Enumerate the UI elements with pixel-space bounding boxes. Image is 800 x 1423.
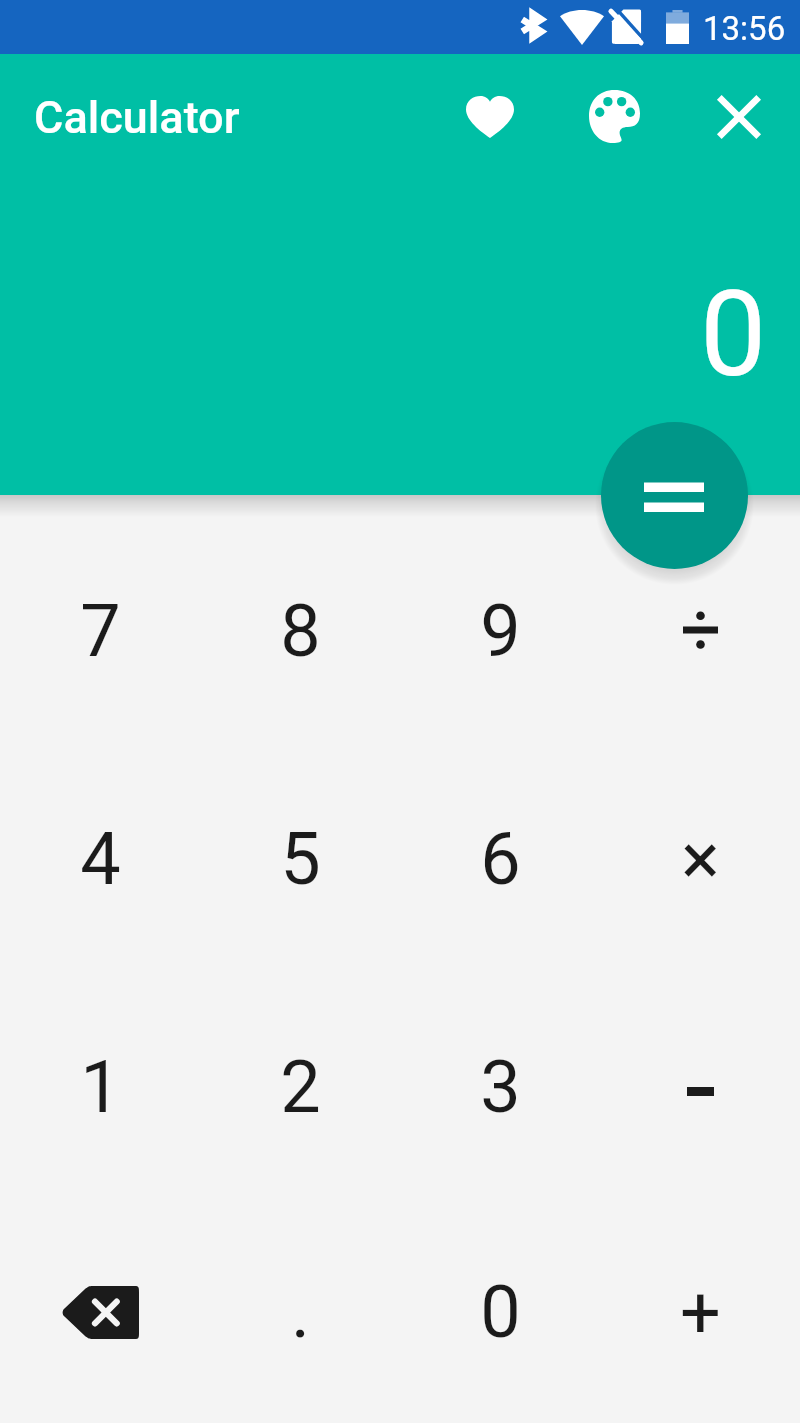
staticText: 9 (480, 589, 521, 673)
button[interactable]: 8 (200, 517, 400, 745)
staticText: 6 (480, 817, 521, 901)
staticText: 7 (80, 589, 121, 673)
button[interactable] (600, 973, 800, 1201)
staticText: . (291, 1270, 310, 1354)
button[interactable]: 1 (0, 973, 200, 1201)
staticText: × (681, 817, 720, 901)
button[interactable]: Close (691, 54, 787, 184)
staticText: 5 (280, 817, 321, 901)
button[interactable]: 6 (400, 745, 600, 973)
staticText: + (680, 1270, 721, 1354)
staticText: 2 (280, 1045, 321, 1129)
button[interactable]: 5 (200, 745, 400, 973)
button[interactable]: × (600, 745, 800, 973)
button[interactable]: 0 (400, 1201, 600, 1423)
button[interactable]: . (200, 1201, 400, 1423)
button[interactable]: 7 (0, 517, 200, 745)
staticText: 0 (700, 266, 767, 404)
staticText: 0 (480, 1270, 521, 1354)
button[interactable]: Favorite (442, 54, 538, 184)
staticText: 4 (80, 817, 121, 901)
button[interactable]: 9 (400, 517, 600, 745)
button[interactable]: Theme (566, 54, 662, 184)
button[interactable]: + (600, 1201, 800, 1423)
button[interactable]: 2 (200, 973, 400, 1201)
staticText: 1 (80, 1045, 121, 1129)
staticText: 8 (280, 589, 321, 673)
button[interactable]: 4 (0, 745, 200, 973)
button[interactable] (0, 1201, 200, 1423)
staticText: 13:56 (703, 9, 786, 48)
staticText: Calculator (34, 91, 240, 144)
staticText: 3 (480, 1045, 521, 1129)
button[interactable]: 3 (400, 973, 600, 1201)
button[interactable]: Equals (601, 422, 748, 569)
button[interactable] (600, 517, 800, 745)
